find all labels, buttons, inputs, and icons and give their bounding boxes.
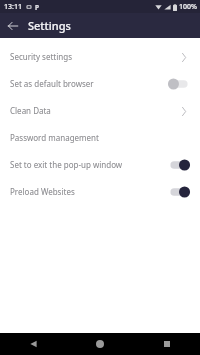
- other: Open: [178, 49, 190, 65]
- button[interactable]: Back: [3, 16, 23, 36]
- other: Open: [178, 103, 190, 119]
- staticText: 13:11: [4, 2, 22, 12]
- staticText: 100%: [179, 2, 197, 12]
- button[interactable]: Set to exit the pop-up window: [0, 151, 200, 178]
- staticText: Clean Data: [10, 105, 178, 116]
- button[interactable]: Toggle off: [168, 77, 190, 91]
- staticText: Set as default browser: [10, 78, 168, 89]
- staticText: Settings: [28, 18, 71, 33]
- staticText: Security settings: [10, 51, 178, 62]
- button[interactable]: Password management: [0, 124, 200, 151]
- button[interactable]: Preload Websites: [0, 178, 200, 205]
- staticText: Preload Websites: [10, 186, 168, 197]
- button[interactable]: Security settings: [0, 43, 200, 70]
- button[interactable]: Recent apps: [133, 333, 200, 355]
- button[interactable]: Toggle on: [168, 158, 190, 172]
- button[interactable]: Toggle on: [168, 185, 190, 199]
- staticText: Set to exit the pop-up window: [10, 159, 168, 170]
- button[interactable]: Set as default browser: [0, 70, 200, 97]
- button[interactable]: Back: [0, 333, 66, 355]
- button[interactable]: Clean Data: [0, 97, 200, 124]
- staticText: P: [35, 3, 40, 12]
- button[interactable]: Home: [66, 333, 133, 355]
- staticText: Password management: [10, 132, 190, 143]
